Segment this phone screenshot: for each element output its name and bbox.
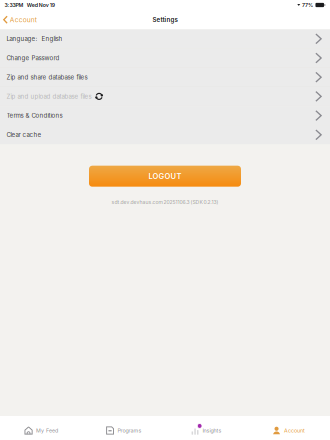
button[interactable]: Clear cache — [0, 125, 330, 144]
button[interactable]: LOGOUT — [89, 166, 241, 187]
staticText: Account — [10, 16, 37, 24]
staticText: Insights — [202, 427, 221, 434]
staticText: Language: English — [7, 35, 63, 42]
staticText: Programs — [117, 427, 141, 434]
staticText: sdt.dev.devhaus.com 20251106.3 (SDK 0.2.… — [111, 199, 218, 205]
staticText: LOGOUT — [148, 172, 181, 181]
button[interactable]: Change Password — [0, 49, 330, 67]
button[interactable]: Programs — [82, 416, 165, 440]
staticText: My Feed — [36, 427, 58, 434]
staticText: Clear cache — [7, 131, 42, 138]
staticText: 77% — [302, 2, 313, 8]
staticText: Zip and share database files — [7, 73, 88, 81]
button[interactable]: Language: English — [0, 29, 330, 48]
button[interactable]: Terms & Conditions — [0, 106, 330, 125]
staticText: Wed Nov 19 — [27, 2, 55, 8]
button[interactable]: Zip and share database files — [0, 68, 330, 87]
staticText: Change Password — [7, 54, 60, 62]
button[interactable]: Account — [247, 416, 330, 440]
staticText: 3:33PM — [4, 2, 23, 8]
staticText: Terms & Conditions — [7, 112, 63, 119]
staticText: Account — [284, 427, 305, 434]
button[interactable]: Insights — [165, 416, 247, 440]
button[interactable]: Account — [0, 10, 42, 29]
button[interactable]: Zip and upload database files — [0, 87, 330, 106]
button[interactable]: My Feed — [0, 416, 82, 440]
staticText: Zip and upload database files — [7, 93, 92, 100]
staticText: Settings — [152, 16, 177, 23]
